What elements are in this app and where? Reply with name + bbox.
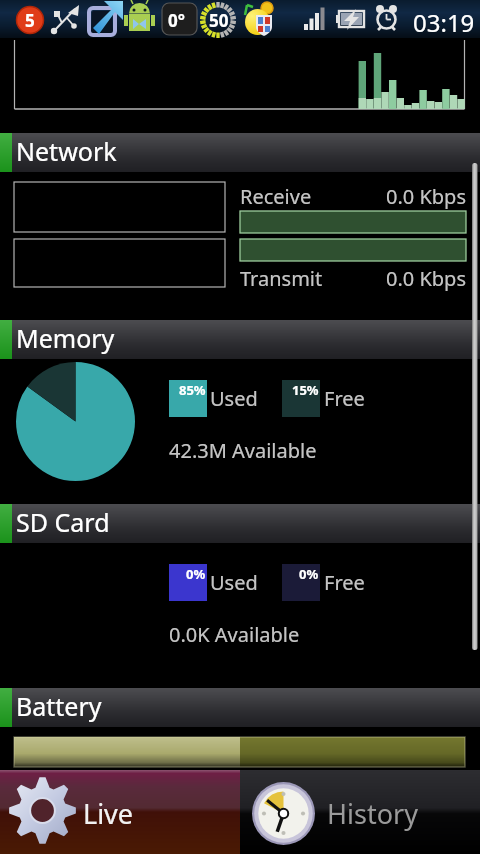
staticText: Battery (16, 689, 102, 723)
staticText: Used (210, 385, 258, 412)
button[interactable]: Memory (0, 320, 480, 359)
staticText: 0% (186, 565, 206, 583)
staticText: Memory (16, 321, 115, 355)
staticText: 5 (25, 9, 35, 32)
button[interactable]: History (240, 770, 480, 854)
button[interactable]: Battery (0, 688, 480, 727)
staticText: Receive (240, 183, 312, 210)
staticText: 03:19 (413, 6, 475, 39)
button[interactable]: Live (0, 770, 240, 854)
button[interactable]: Network (0, 133, 480, 172)
staticText: 0.0 Kbps (386, 265, 466, 292)
staticText: 0° (168, 9, 185, 32)
staticText: History (327, 795, 418, 832)
staticText: Free (324, 385, 365, 412)
staticText: 85% (179, 381, 206, 399)
button[interactable]: SD Card (0, 504, 480, 543)
staticText: Live (83, 795, 134, 832)
staticText: Transmit (240, 265, 323, 292)
staticText: Used (210, 569, 258, 596)
staticText: Free (324, 569, 365, 596)
staticText: 0.0 Kbps (386, 183, 466, 210)
staticText: 0.0K Available (169, 621, 300, 648)
staticText: 15% (292, 381, 319, 399)
staticText: Network (16, 134, 117, 168)
staticText: 50 (209, 9, 229, 32)
staticText: SD Card (16, 505, 110, 539)
staticText: 42.3M Available (169, 437, 317, 464)
staticText: 0% (299, 565, 319, 583)
